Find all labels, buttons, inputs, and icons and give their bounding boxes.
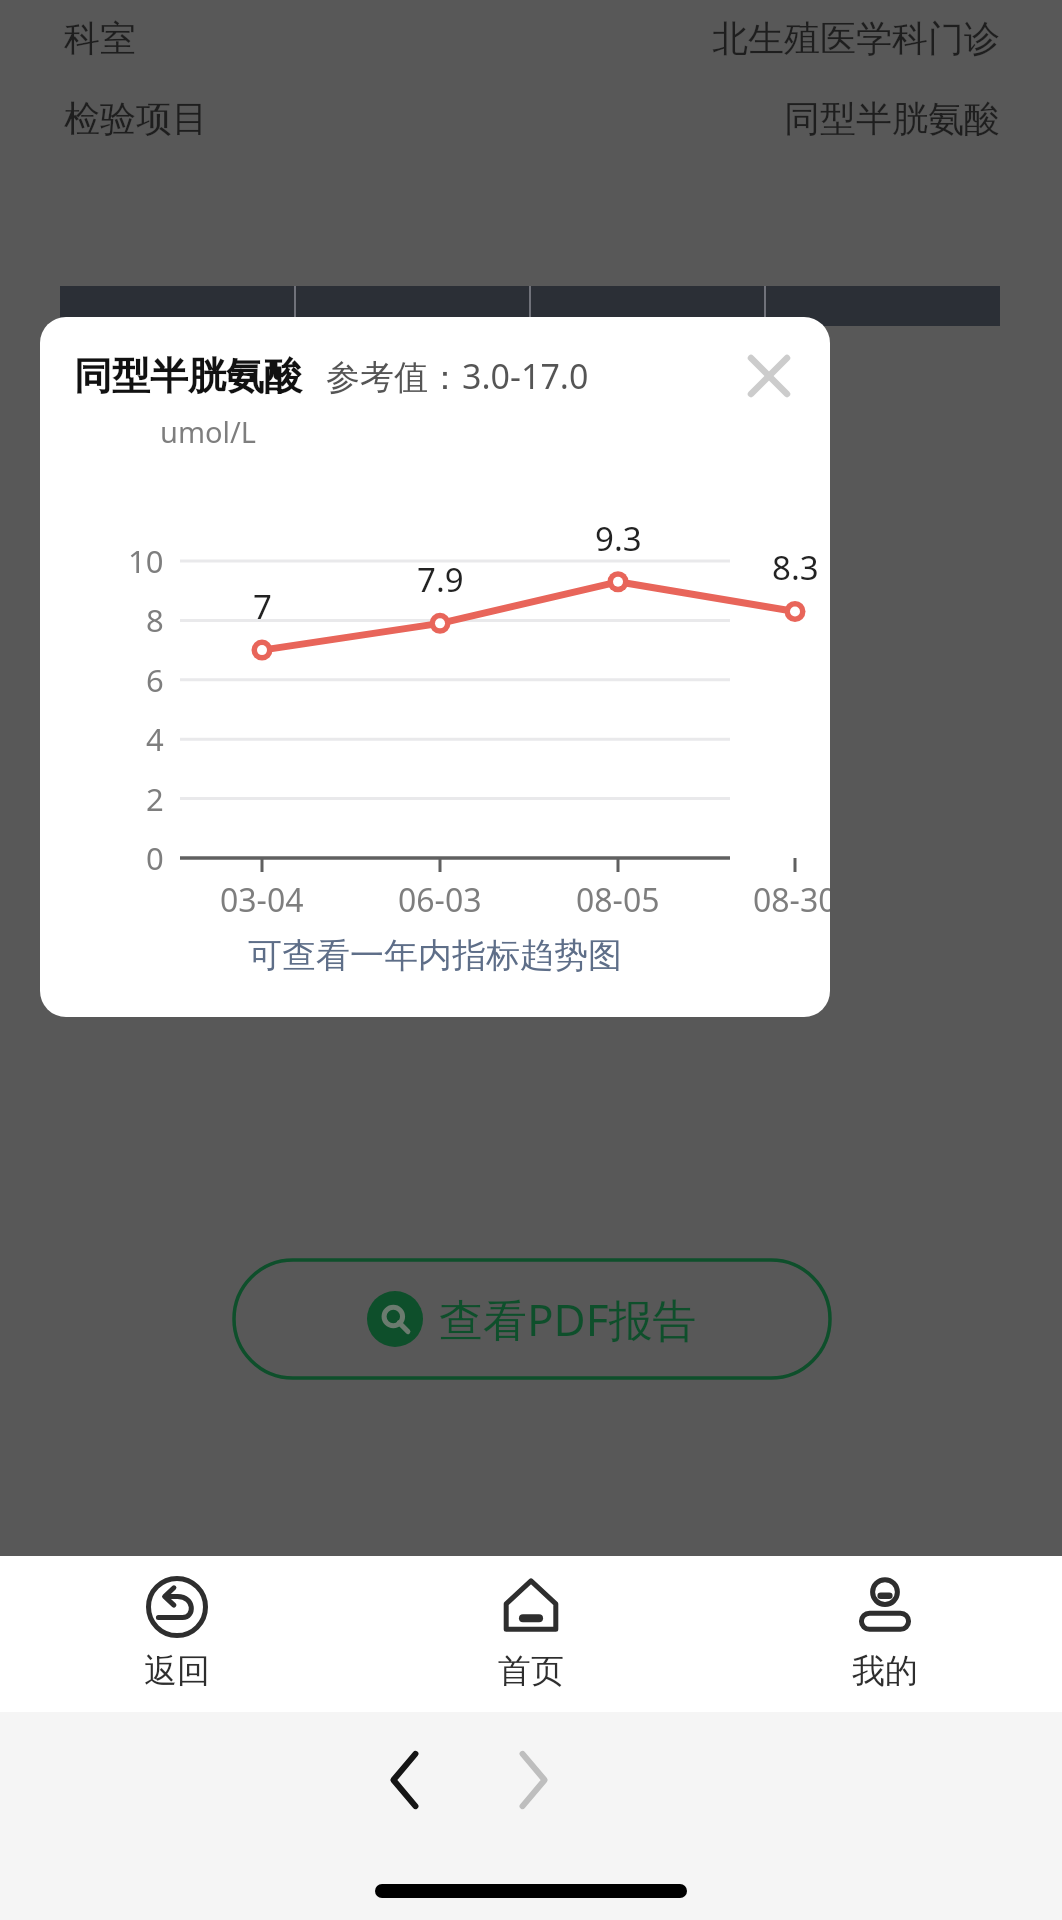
button[interactable]: 我的 <box>708 1556 1062 1712</box>
staticText: 7 <box>253 584 272 629</box>
staticText: 我的 <box>852 1650 918 1692</box>
staticText: 同型半胱氨酸 <box>784 96 1000 141</box>
staticText: umol/L <box>160 412 257 451</box>
staticText: 7.9 <box>417 557 464 602</box>
button[interactable]: 查看PDF报告 <box>232 1258 832 1380</box>
button[interactable]: 上一页 <box>345 1720 465 1840</box>
button[interactable]: 关闭 <box>732 339 806 413</box>
staticText: 06-03 <box>398 878 482 922</box>
staticText: 9.3 <box>595 516 642 561</box>
staticText: 返回 <box>144 1650 210 1692</box>
staticText: 可查看一年内指标趋势图 <box>248 934 622 977</box>
staticText: 参考值：3.0-17.0 <box>326 353 589 399</box>
button[interactable]: 可查看一年内指标趋势图 <box>40 917 830 993</box>
staticText: 0 <box>146 837 164 879</box>
staticText: 03-04 <box>220 878 304 922</box>
button[interactable]: 返回 <box>0 1556 354 1712</box>
staticText: 科室 <box>64 16 136 61</box>
button[interactable]: 下一页 <box>473 1720 593 1840</box>
staticText: 8 <box>146 599 164 641</box>
staticText: 2 <box>146 778 164 820</box>
staticText: 10 <box>128 540 164 582</box>
staticText: 首页 <box>498 1650 564 1692</box>
staticText: 北生殖医学科门诊 <box>712 16 1000 61</box>
staticText: 08-30 <box>753 878 830 922</box>
staticText: 8.3 <box>772 545 819 590</box>
staticText: 检验项目 <box>64 96 208 141</box>
staticText: 4 <box>146 718 164 760</box>
staticText: 查看PDF报告 <box>439 1289 697 1349</box>
staticText: 08-05 <box>576 878 660 922</box>
staticText: 同型半胱氨酸 <box>74 352 302 400</box>
staticText: 6 <box>146 659 164 701</box>
button[interactable]: 首页 <box>354 1556 708 1712</box>
